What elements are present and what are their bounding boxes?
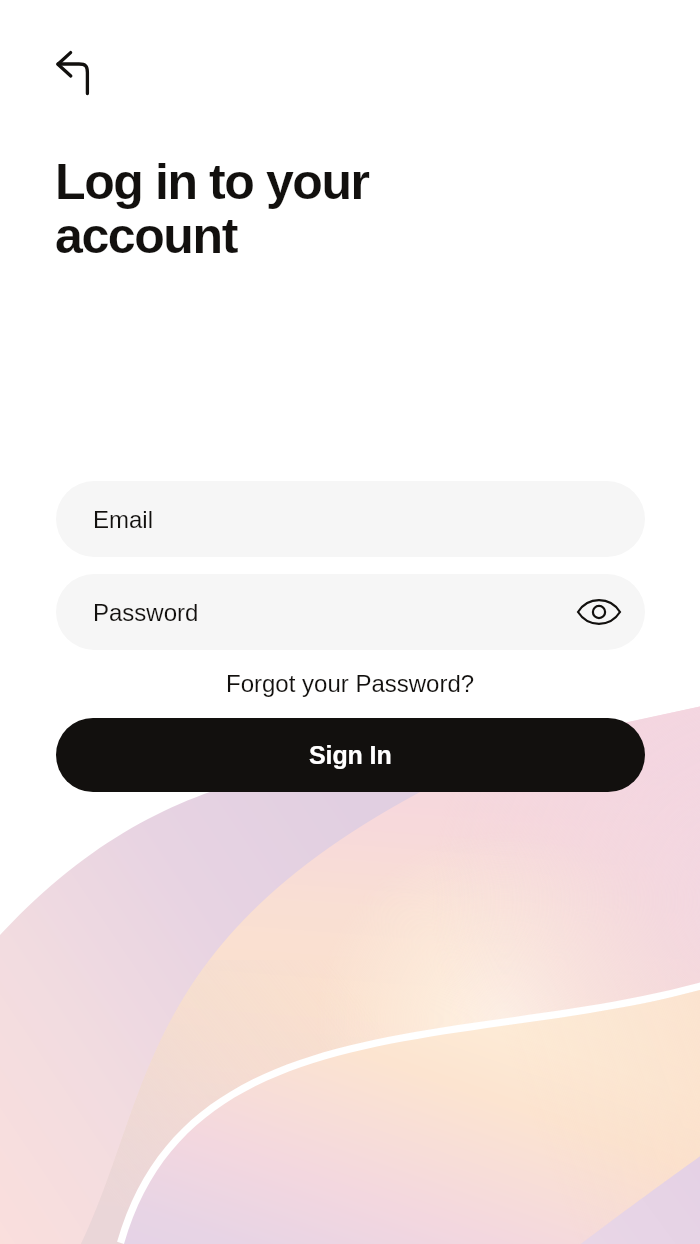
button[interactable]: Email [56,481,645,557]
staticText: Email [93,506,154,533]
staticText: Log in to your account [55,154,369,263]
staticText: Sign In [309,741,392,769]
button[interactable]: Sign In [56,718,645,792]
staticText: Forgot your Password? [226,670,475,697]
button[interactable]: Password [56,574,645,650]
staticText: Password [93,599,199,626]
button[interactable]: Back [57,52,113,108]
button[interactable]: Forgot your Password? [216,666,485,701]
button[interactable]: Show password [576,589,622,635]
